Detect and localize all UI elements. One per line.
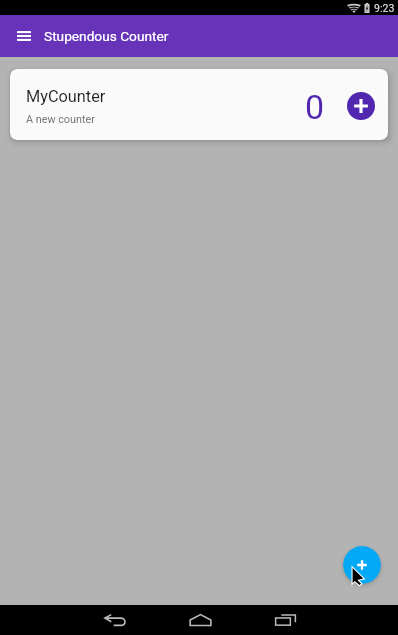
button[interactable]: Increment [347,92,375,120]
staticText: Stupendous Counter [44,28,169,44]
staticText: 0 [305,87,325,127]
staticText: MyCounter [26,87,106,106]
button[interactable]: MyCounter [10,69,388,140]
staticText: 9:23 [374,2,395,14]
button[interactable]: Recent apps [264,605,306,635]
button[interactable]: Open navigation menu [10,22,38,50]
button[interactable]: Add counter [343,546,381,584]
staticText: A new counter [26,113,95,126]
button[interactable]: Back [94,605,136,635]
button[interactable]: Home [179,605,221,635]
